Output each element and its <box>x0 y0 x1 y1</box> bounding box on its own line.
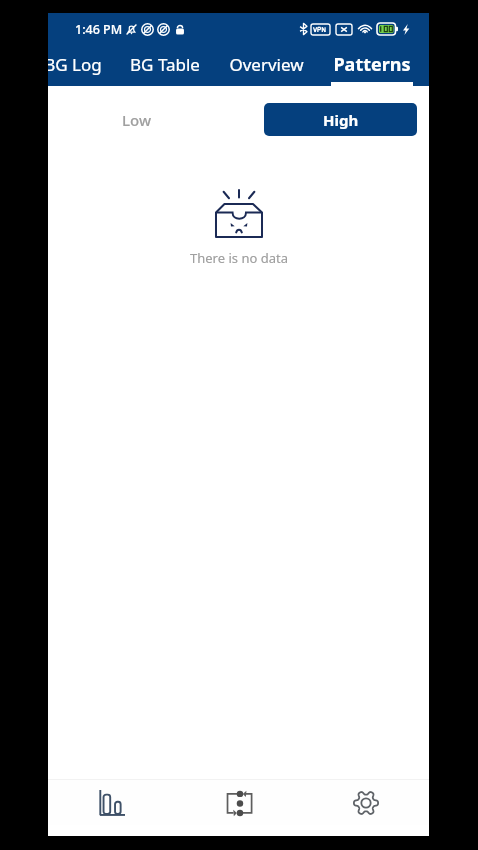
button[interactable]: Statistics <box>48 780 175 825</box>
button[interactable]: Settings <box>302 780 429 825</box>
staticText: Low <box>122 110 151 130</box>
staticText: Overview <box>229 53 304 76</box>
button[interactable]: BG Table <box>115 45 215 86</box>
button[interactable]: Patterns <box>320 45 423 86</box>
button[interactable]: High <box>264 103 417 136</box>
staticText: There is no data <box>190 249 288 267</box>
staticText: Patterns <box>333 52 411 77</box>
staticText: BG Table <box>130 53 200 76</box>
button[interactable]: Overview <box>216 45 316 86</box>
staticText: High <box>323 110 359 130</box>
button[interactable]: Low <box>60 103 213 136</box>
button[interactable]: BG Log <box>48 45 118 86</box>
staticText: 1:46 PM <box>75 21 123 38</box>
button[interactable]: Sync <box>175 780 302 825</box>
staticText: BG Log <box>48 53 102 76</box>
